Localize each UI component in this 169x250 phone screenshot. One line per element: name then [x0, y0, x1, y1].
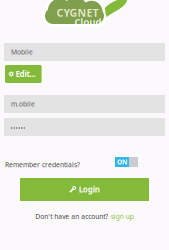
staticText: sign up — [111, 212, 134, 221]
staticText: Cloud — [74, 15, 101, 28]
button[interactable]: Login — [20, 178, 149, 201]
staticText: ON — [117, 158, 127, 166]
staticText: Edit... — [16, 69, 36, 79]
staticText: Don't have an account? — [35, 212, 108, 221]
staticText: Mobile — [11, 48, 33, 56]
button[interactable]: Remember credentials — [115, 157, 138, 167]
button[interactable]: Edit... — [5, 65, 42, 83]
staticText: Login — [79, 184, 100, 195]
staticText: m.obile — [11, 100, 35, 108]
staticText: CYGNET — [56, 5, 98, 20]
button[interactable]: sign up — [111, 212, 134, 221]
staticText: Remember credentials? — [5, 160, 80, 169]
